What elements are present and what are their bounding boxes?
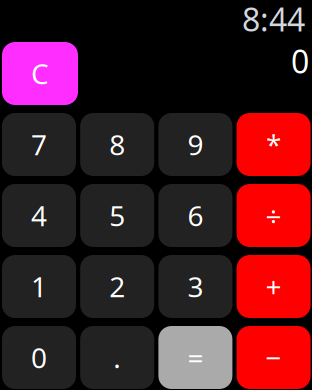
staticText: = [187, 339, 203, 376]
staticText: − [266, 339, 282, 376]
staticText: 2 [109, 268, 125, 305]
button[interactable]: 7 [2, 113, 76, 176]
button[interactable]: 2 [80, 255, 154, 318]
staticText: . [113, 339, 121, 376]
button[interactable]: 5 [80, 184, 154, 247]
staticText: 7 [31, 126, 47, 163]
button[interactable]: Decimal point [80, 326, 154, 389]
staticText: C [31, 55, 49, 92]
staticText: 3 [187, 268, 203, 305]
staticText: + [266, 268, 282, 305]
button[interactable]: 8 [80, 113, 154, 176]
staticText: 4 [31, 197, 47, 234]
button[interactable]: 4 [2, 184, 76, 247]
button[interactable]: Multiply [237, 113, 311, 176]
button[interactable]: 9 [158, 113, 232, 176]
staticText: 0 [31, 339, 47, 376]
staticText: ÷ [266, 197, 282, 234]
button[interactable]: Equals [158, 326, 232, 389]
staticText: 8:44 [242, 0, 305, 40]
staticText: 6 [187, 197, 203, 234]
button[interactable]: 6 [158, 184, 232, 247]
button[interactable]: 0 [2, 326, 76, 389]
button[interactable]: Clear [2, 42, 78, 105]
button[interactable]: 1 [2, 255, 76, 318]
button[interactable]: 3 [158, 255, 232, 318]
staticText: 9 [187, 126, 203, 163]
staticText: 0 [291, 40, 309, 82]
staticText: 1 [31, 268, 47, 305]
button[interactable]: Subtract [237, 326, 311, 389]
button[interactable]: Add [237, 255, 311, 318]
staticText: * [266, 126, 281, 163]
staticText: 8 [109, 126, 125, 163]
button[interactable]: Divide [237, 184, 311, 247]
staticText: 5 [109, 197, 125, 234]
